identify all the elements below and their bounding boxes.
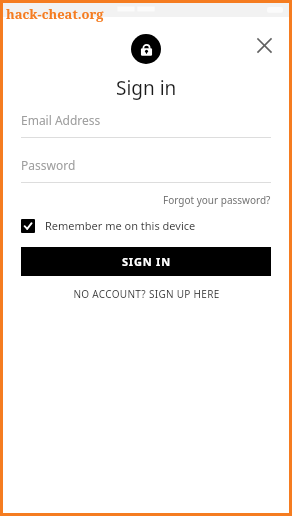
button[interactable]: Remember me on this device: [21, 218, 271, 233]
staticText: SIGN IN: [122, 254, 171, 269]
staticText: Remember me on this device: [45, 218, 196, 233]
staticText: Sign in: [116, 75, 177, 100]
button[interactable]: Password: [21, 138, 271, 183]
button[interactable]: Close: [250, 31, 278, 59]
button[interactable]: Forgot your password?: [163, 193, 271, 207]
button[interactable]: Email Address: [21, 100, 271, 138]
button[interactable]: SIGN IN: [21, 247, 271, 276]
button[interactable]: NO ACCOUNT? SIGN UP HERE: [21, 287, 271, 301]
staticText: Password: [21, 157, 76, 173]
staticText: hack-cheat.org: [6, 5, 104, 23]
staticText: Email Address: [21, 112, 101, 128]
staticText: NO ACCOUNT? SIGN UP HERE: [73, 287, 220, 301]
staticText: Forgot your password?: [163, 193, 271, 207]
